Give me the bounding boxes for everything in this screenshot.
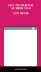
button[interactable]: Close [32, 27, 37, 30]
staticText: Add money [13, 12, 28, 15]
staticText: Get started now [10, 7, 30, 10]
button[interactable]: Add money [13, 12, 28, 15]
staticText: Send money abroad [7, 4, 33, 7]
